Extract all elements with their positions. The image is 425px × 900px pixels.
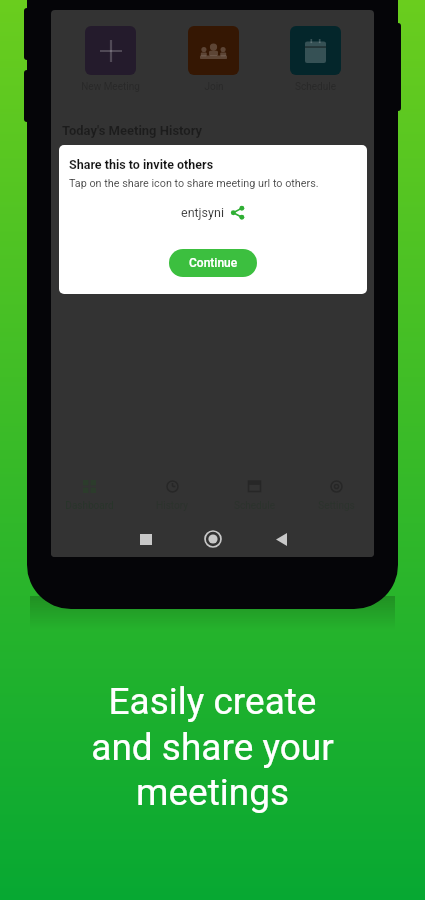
button[interactable]: Schedule xyxy=(275,26,356,93)
button[interactable]: Continue xyxy=(169,249,257,277)
button[interactable]: New Meeting xyxy=(70,26,151,93)
staticText: Today's Meeting History xyxy=(62,123,203,138)
button[interactable]: Back xyxy=(269,527,293,551)
button[interactable]: Share meeting link xyxy=(230,205,245,220)
staticText: Dashboard xyxy=(65,500,114,512)
staticText: entjsyni xyxy=(181,205,224,220)
button[interactable]: Join xyxy=(173,26,254,93)
staticText: Schedule xyxy=(295,81,336,93)
staticText: New Meeting xyxy=(81,81,140,93)
button[interactable]: Home xyxy=(201,527,225,551)
staticText: Easily create and share your meetings xyxy=(0,680,425,814)
staticText: Tap on the share icon to share meeting u… xyxy=(69,177,319,190)
staticText: Share this to invite others xyxy=(69,157,214,172)
button[interactable]: Recents xyxy=(134,527,158,551)
staticText: Continue xyxy=(189,256,238,270)
